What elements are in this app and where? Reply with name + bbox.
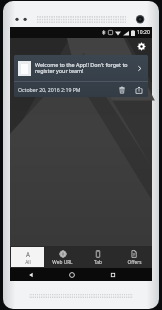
button[interactable]: Tab <box>81 247 115 267</box>
button[interactable]: Settings <box>134 39 149 54</box>
staticText: A <box>26 250 30 258</box>
button[interactable]: Web URL <box>46 247 79 267</box>
staticText: 10:20 <box>137 29 150 36</box>
button[interactable]: A <box>11 247 44 267</box>
staticText: October 20, 2016 2:19 PM <box>18 86 81 93</box>
button[interactable]: Open notification <box>134 63 144 73</box>
staticText: Tab <box>94 259 102 265</box>
staticText: Offers <box>127 259 142 265</box>
button[interactable]: Offers <box>117 247 151 267</box>
button[interactable]: Share <box>133 84 145 96</box>
button[interactable]: Delete <box>116 84 128 96</box>
button[interactable]: Back <box>10 268 51 281</box>
staticText: All <box>25 259 31 265</box>
staticText: Web URL <box>52 259 73 265</box>
button[interactable]: Recent apps <box>92 268 133 281</box>
button[interactable]: Home <box>51 268 92 281</box>
button[interactable]: Welcome to the App!! Don't forget to reg… <box>14 55 148 81</box>
staticText: Welcome to the App!! Don't forget to reg… <box>35 61 132 75</box>
